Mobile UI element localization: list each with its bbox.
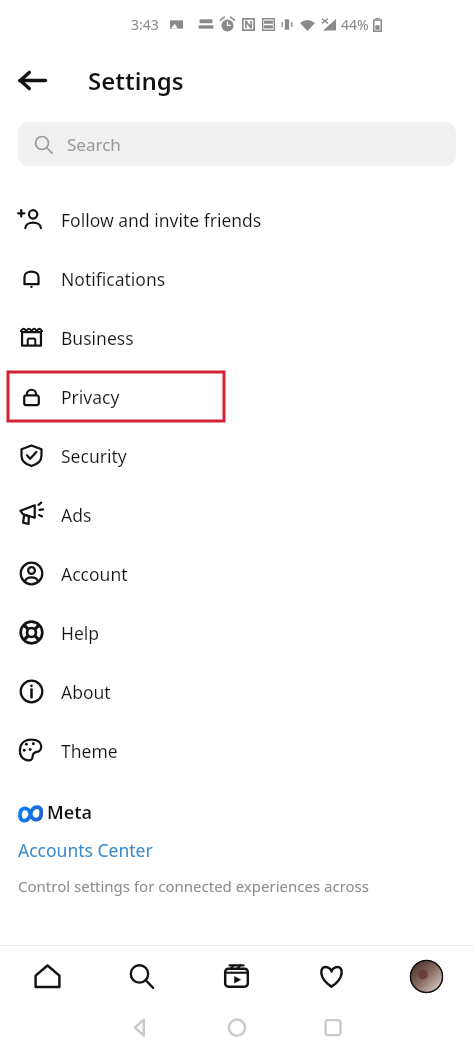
button[interactable]: Follow and invite friends [0, 190, 474, 249]
button[interactable]: Help [0, 603, 474, 662]
staticText: Account [61, 562, 128, 586]
button[interactable]: Search [94, 946, 189, 1006]
button[interactable]: Security [0, 426, 474, 485]
staticText: Theme [61, 739, 118, 763]
button[interactable]: Search [18, 122, 456, 166]
button[interactable]: Reels [189, 946, 284, 1006]
staticText: Ads [61, 503, 92, 527]
button[interactable]: Account [0, 544, 474, 603]
staticText: Privacy [61, 385, 120, 409]
staticText: Accounts Center [18, 838, 153, 862]
button[interactable]: Theme [0, 721, 474, 780]
staticText: About [61, 680, 111, 704]
button[interactable]: Ads [0, 485, 474, 544]
staticText: 44% [341, 15, 369, 34]
button[interactable]: Home [0, 946, 94, 1006]
staticText: Security [61, 444, 127, 468]
button[interactable]: Activity [284, 946, 379, 1006]
button[interactable]: Back [6, 54, 58, 106]
staticText: Meta [47, 800, 93, 825]
staticText: Help [61, 621, 100, 645]
button[interactable]: Business [0, 308, 474, 367]
staticText: Follow and invite friends [61, 208, 262, 232]
staticText: 3:43 [131, 15, 159, 34]
staticText: Settings [88, 64, 184, 97]
staticText: Notifications [61, 267, 166, 291]
staticText: Control settings for connected experienc… [18, 876, 369, 896]
button[interactable]: Privacy [0, 367, 474, 426]
staticText: Business [61, 326, 134, 350]
staticText: Search [67, 133, 121, 156]
button[interactable]: About [0, 662, 474, 721]
button[interactable]: Accounts Center [18, 838, 153, 862]
button[interactable]: Profile [379, 946, 474, 1006]
button[interactable]: Notifications [0, 249, 474, 308]
